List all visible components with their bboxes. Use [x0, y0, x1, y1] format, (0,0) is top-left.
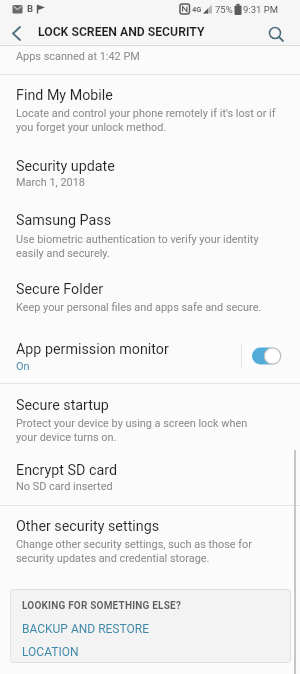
- staticText: Secure Folder: [16, 281, 104, 298]
- staticText: LOCATION: [22, 645, 79, 659]
- staticText: Find My Mobile: [16, 87, 113, 104]
- staticText: App permission monitor: [16, 341, 169, 358]
- staticText: Keep your personal files and apps safe a…: [16, 301, 262, 314]
- staticText: No SD card inserted: [16, 480, 113, 493]
- staticText: Protect your device by using a screen lo…: [16, 417, 248, 444]
- staticText: 75%: [215, 4, 233, 15]
- button[interactable]: Secure startup: [0, 390, 300, 452]
- staticText: 4G: [192, 5, 202, 14]
- staticText: Other security settings: [16, 518, 160, 535]
- staticText: Use biometric authentication to verify y…: [16, 233, 259, 260]
- staticText: On: [16, 360, 30, 373]
- staticText: Secure startup: [16, 397, 109, 414]
- staticText: LOOKING FOR SOMETHING ELSE?: [22, 600, 182, 612]
- button[interactable]: App permission monitor: [0, 332, 300, 383]
- button[interactable]: Other security settings: [0, 511, 300, 577]
- button[interactable]: Encrypt SD card: [0, 455, 300, 505]
- staticText: Locate and control your phone remotely i…: [16, 107, 276, 134]
- staticText: Security update: [16, 158, 115, 175]
- staticText: Samsung Pass: [16, 212, 112, 229]
- button[interactable]: Find My Mobile: [0, 80, 300, 146]
- staticText: Encrypt SD card: [16, 462, 117, 479]
- staticText: March 1, 2018: [16, 176, 85, 189]
- staticText: B: [27, 3, 34, 14]
- staticText: Change other security settings, such as …: [16, 538, 253, 565]
- button[interactable]: [4, 18, 32, 46]
- staticText: LOCK SCREEN AND SECURITY: [38, 25, 205, 39]
- button[interactable]: LOCATION: [10, 642, 291, 662]
- button[interactable]: Security update: [0, 150, 300, 202]
- button[interactable]: Secure Folder: [0, 274, 300, 326]
- button[interactable]: Samsung Pass: [0, 205, 300, 271]
- staticText: BACKUP AND RESTORE: [22, 622, 149, 636]
- button[interactable]: BACKUP AND RESTORE: [10, 619, 291, 639]
- button[interactable]: [262, 20, 290, 48]
- staticText: 9:31 PM: [243, 4, 278, 15]
- staticText: Apps scanned at 1:42 PM: [16, 50, 140, 63]
